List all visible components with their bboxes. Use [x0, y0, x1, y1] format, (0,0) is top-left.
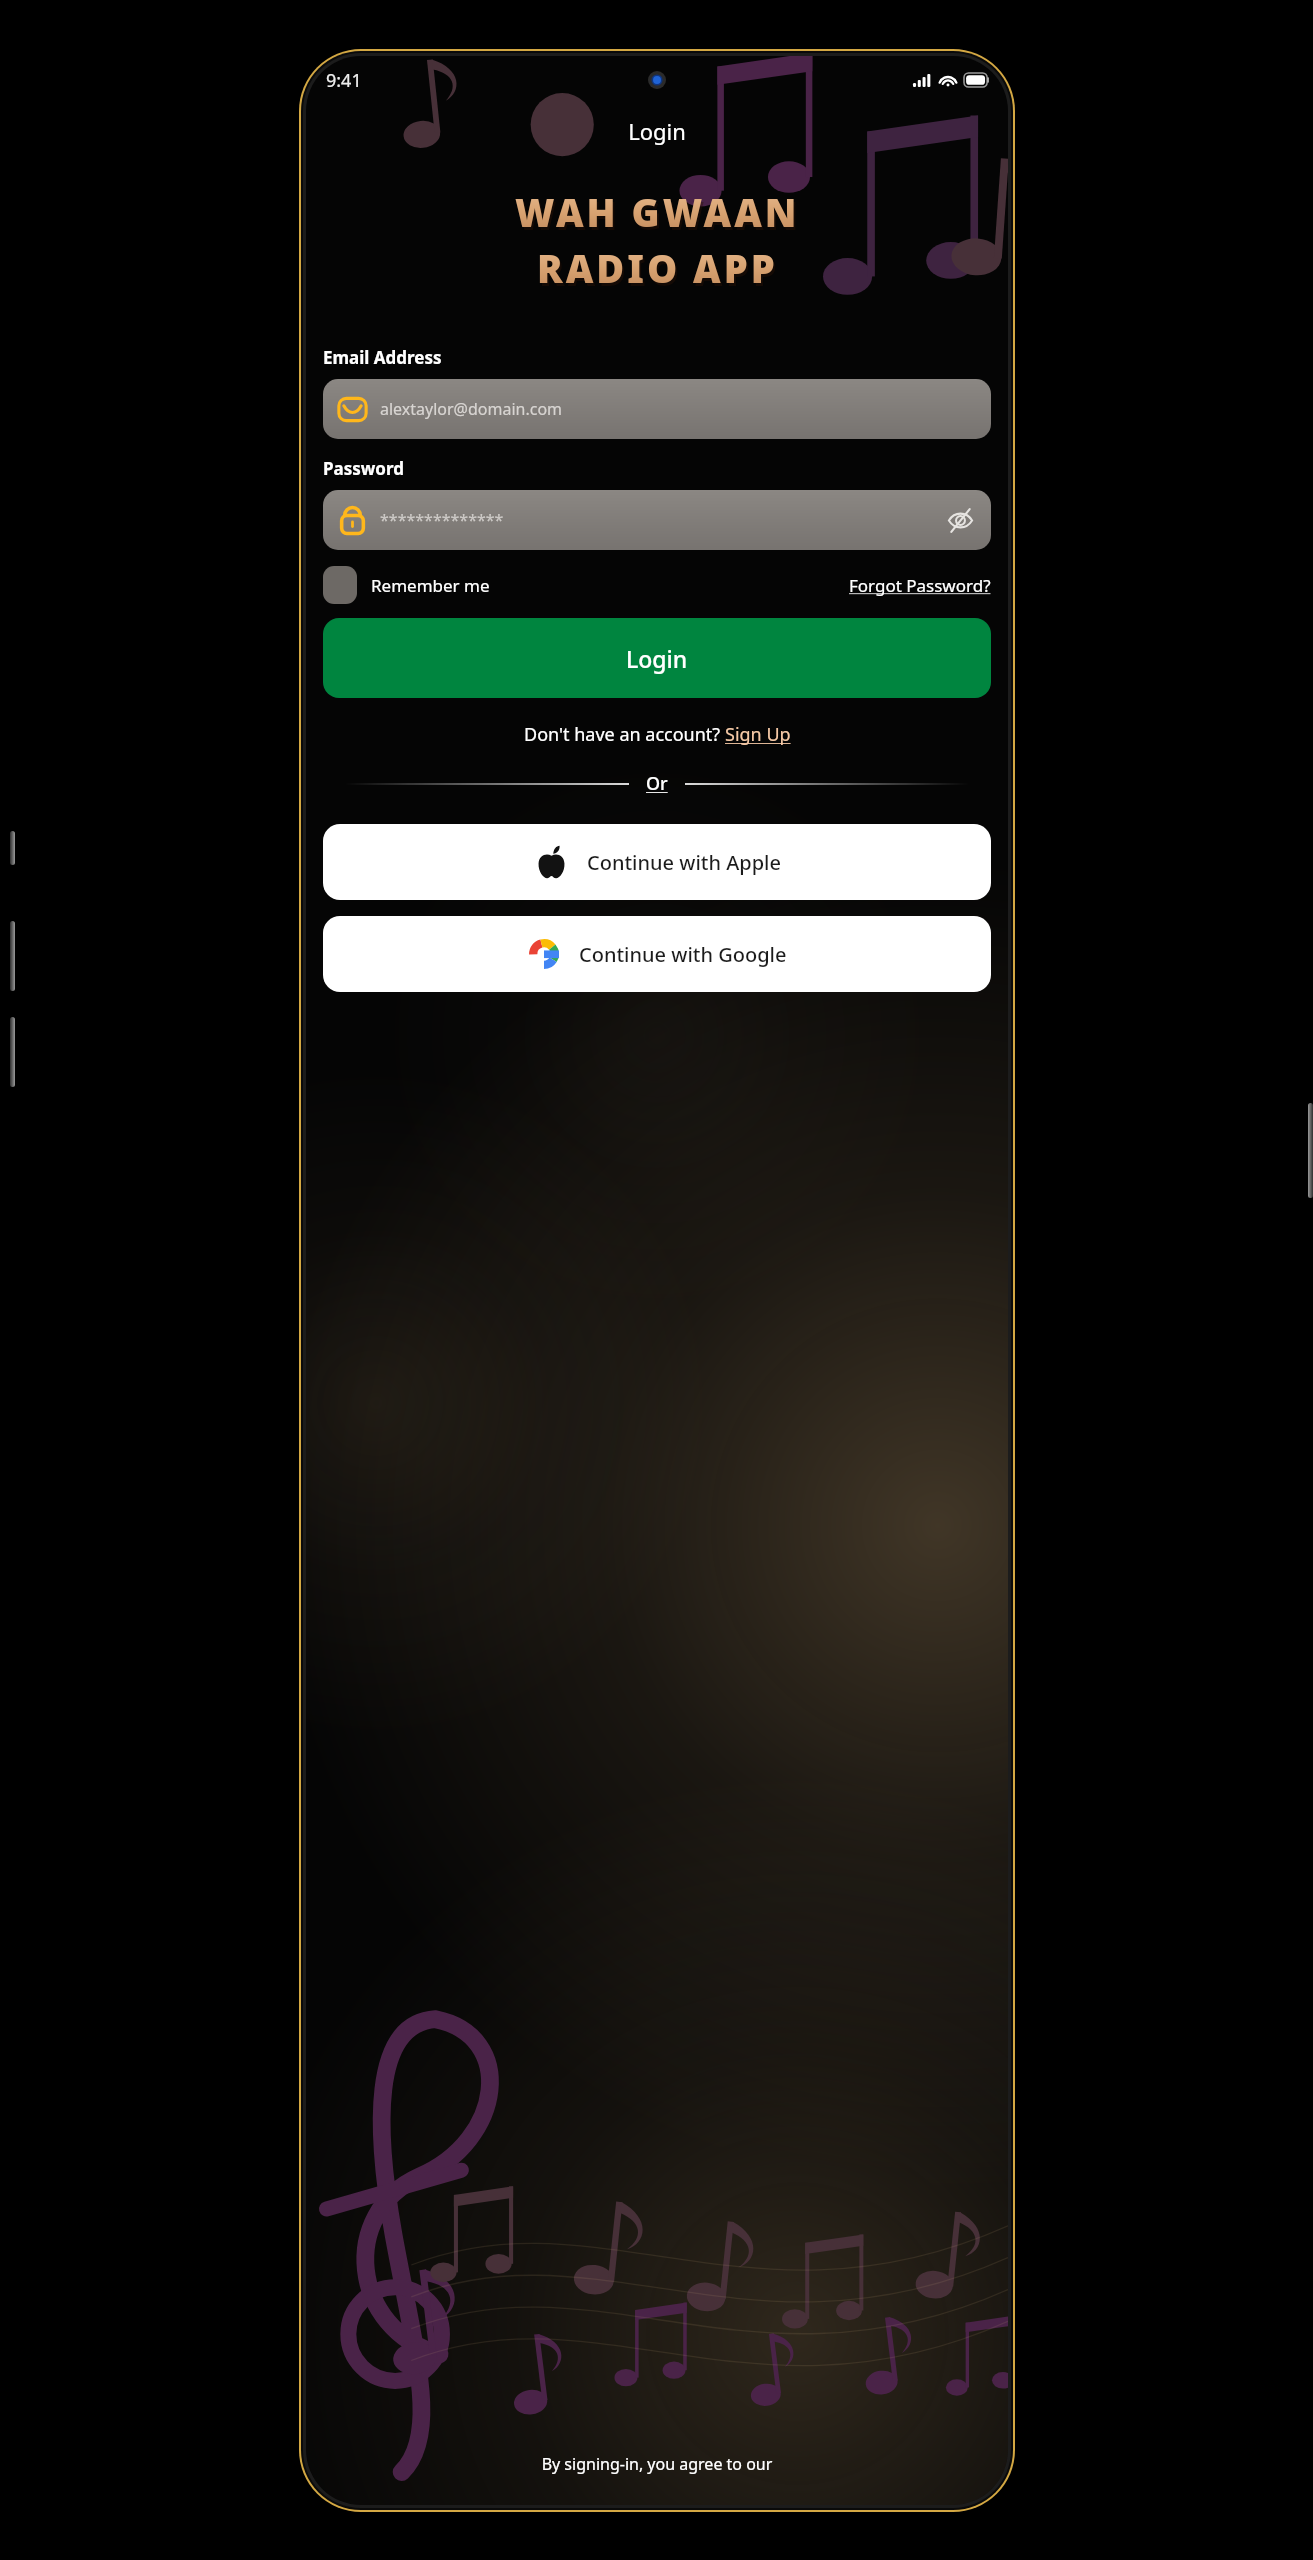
button[interactable]: Show password	[943, 503, 977, 537]
staticText: Login	[306, 116, 1008, 146]
staticText: RADIO APP	[537, 242, 778, 294]
staticText: Forgot Password?	[849, 574, 991, 597]
button[interactable]: Continue with Apple	[323, 824, 991, 900]
staticText: Email Address	[323, 346, 442, 369]
staticText: alextaylor@domain.com	[380, 398, 977, 420]
staticText: Password	[323, 457, 404, 480]
staticText: RADIO APP	[539, 245, 780, 297]
staticText: By signing-in, you agree to our	[306, 2453, 1008, 2475]
staticText: Remember me	[371, 574, 490, 597]
staticText: WAH GWAAN	[515, 186, 800, 238]
staticText: WAH GWAAN	[517, 189, 802, 241]
button[interactable]: Email Address	[323, 379, 991, 439]
button[interactable]: Sign Up	[725, 722, 791, 747]
staticText: 9:41	[326, 68, 362, 93]
button[interactable]: Remember me	[323, 566, 490, 604]
staticText: **************	[380, 509, 943, 531]
staticText: Sign Up	[725, 722, 791, 747]
staticText: Continue with Apple	[587, 849, 781, 876]
staticText: Login	[626, 643, 688, 674]
staticText: Don't have an account?	[524, 722, 725, 747]
button[interactable]: Login	[323, 618, 991, 698]
staticText: Or	[646, 771, 668, 796]
button[interactable]: Forgot Password?	[849, 574, 991, 597]
button[interactable]: Password	[323, 490, 991, 550]
button[interactable]: Continue with Google	[323, 916, 991, 992]
staticText: Continue with Google	[579, 941, 787, 968]
